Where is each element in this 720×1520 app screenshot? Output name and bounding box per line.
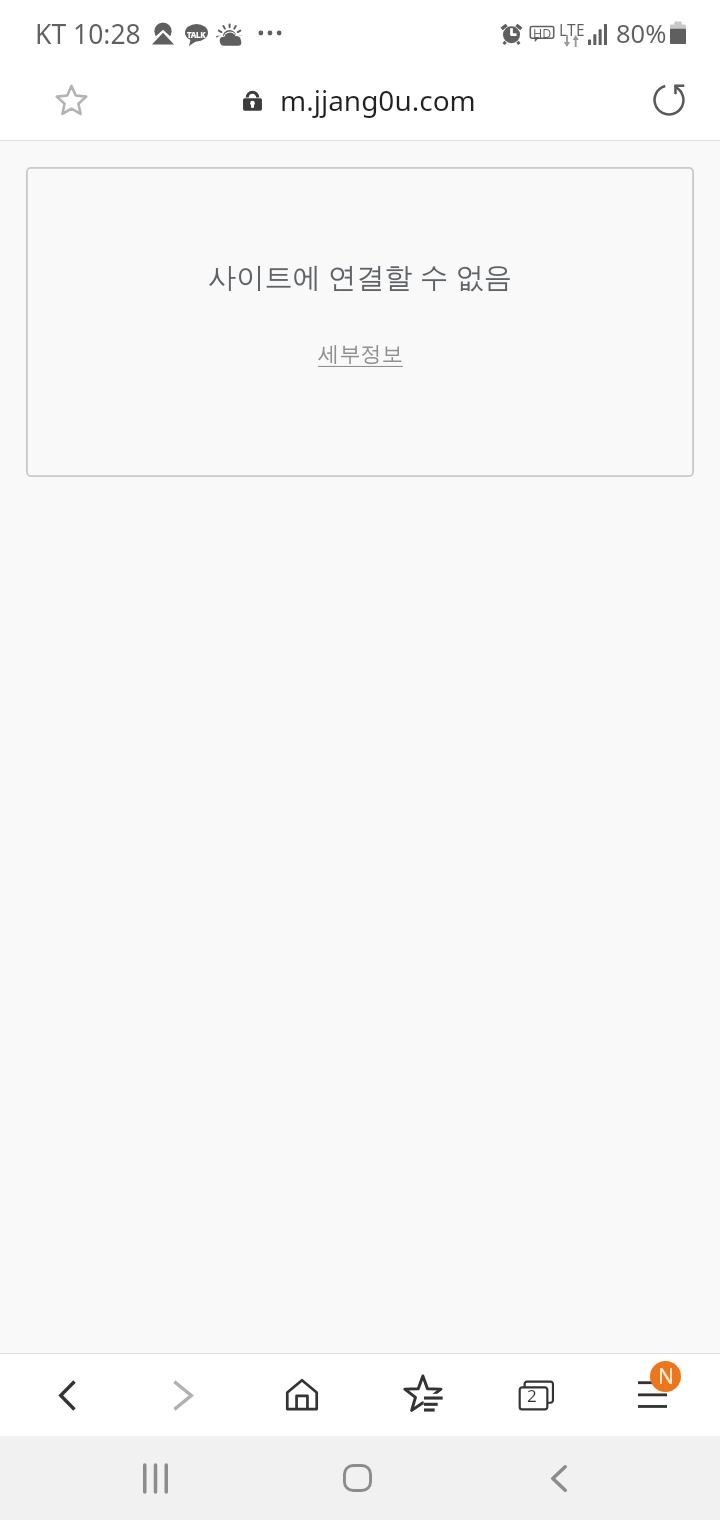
button[interactable]: Recent apps	[115, 1436, 195, 1520]
button[interactable]: 세부정보	[318, 341, 403, 368]
button[interactable]: Back	[0, 1354, 120, 1436]
button[interactable]: Bookmark page	[40, 69, 102, 131]
staticText: m.jjang0u.com	[280, 81, 476, 119]
staticText: KT 10:28	[35, 16, 141, 52]
button[interactable]: Menu	[600, 1354, 720, 1436]
staticText: HD	[533, 25, 552, 42]
button[interactable]: Forward	[120, 1354, 240, 1436]
button[interactable]: Back	[515, 1436, 595, 1520]
staticText: 80%	[616, 16, 667, 51]
button[interactable]: Home	[317, 1436, 397, 1520]
button[interactable]: Home	[240, 1354, 360, 1436]
staticText: 사이트에 연결할 수 없음	[208, 257, 512, 296]
staticText: 2	[527, 1384, 537, 1407]
staticText: N	[658, 1362, 674, 1391]
button[interactable]: m.jjang0u.com	[242, 81, 476, 119]
button[interactable]: Tabs	[480, 1354, 600, 1436]
staticText: TALK	[187, 29, 206, 40]
staticText: LTE	[559, 19, 585, 40]
button[interactable]: Bookmarks	[360, 1354, 480, 1436]
button[interactable]: Reload page	[638, 69, 700, 131]
